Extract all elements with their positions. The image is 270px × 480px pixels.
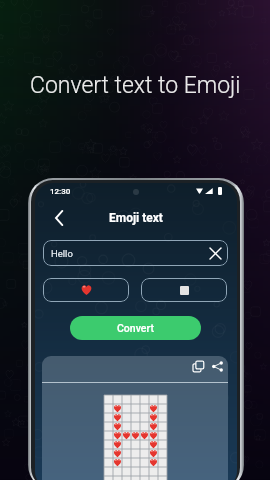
button[interactable]: Hello xyxy=(43,240,228,266)
staticText: Emoji text xyxy=(109,211,163,225)
staticText: Convert xyxy=(117,322,154,334)
button[interactable]: Convert xyxy=(70,316,201,340)
button[interactable]: Clear xyxy=(208,246,222,260)
staticText: Convert text to Emoji xyxy=(30,72,241,99)
button[interactable]: Copy xyxy=(191,359,206,374)
button[interactable]: Red heart emoji xyxy=(43,278,129,302)
staticText: Hello xyxy=(51,248,73,259)
button[interactable]: Share xyxy=(210,359,225,374)
button[interactable]: Back xyxy=(50,208,68,228)
staticText: 12:30 xyxy=(50,187,71,196)
button[interactable]: White square emoji xyxy=(141,278,227,302)
